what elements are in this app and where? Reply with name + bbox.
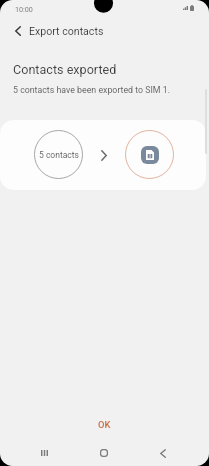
staticText: Contacts exported [13,62,117,77]
staticText: 5 contacts [39,150,79,160]
button[interactable]: SIM 1 [125,130,174,179]
staticText: 5 contacts have been exported to SIM 1. [13,85,170,95]
button[interactable]: OK [84,414,125,434]
staticText: 10:00 [15,5,33,13]
button[interactable]: Home [74,438,133,466]
button[interactable]: Recent apps [15,438,74,466]
button[interactable]: Back [6,19,29,42]
button[interactable]: Back [133,438,192,466]
staticText: Export contacts [29,25,104,37]
button[interactable]: 5 contacts [34,130,83,179]
staticText: OK [98,419,111,430]
